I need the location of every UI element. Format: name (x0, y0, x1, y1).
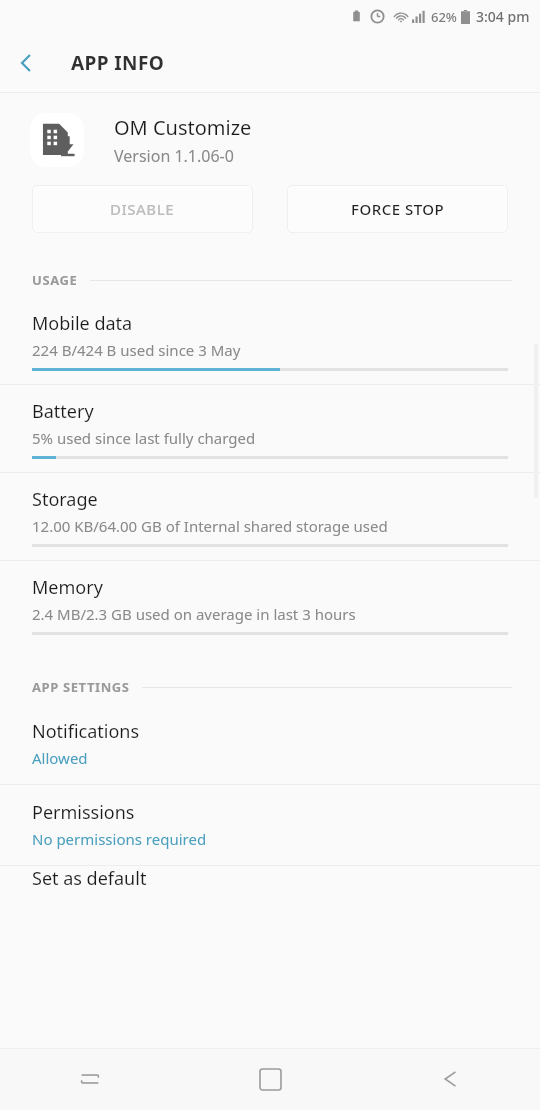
staticText: Mobile data (32, 311, 133, 336)
staticText: 224 B/424 B used since 3 May (32, 340, 241, 360)
button[interactable]: Back (360, 1048, 540, 1110)
staticText: Allowed (32, 748, 88, 768)
button[interactable]: Battery (0, 385, 540, 472)
button[interactable]: Notifications (0, 704, 540, 784)
button[interactable]: Memory (0, 561, 540, 648)
staticText: Set as default (32, 866, 147, 891)
button[interactable]: FORCE STOP (287, 185, 508, 233)
staticText: APP SETTINGS (32, 678, 130, 696)
button[interactable]: Home (180, 1048, 360, 1110)
staticText: DISABLE (110, 199, 175, 219)
button[interactable]: Recents (0, 1048, 180, 1110)
staticText: 12.00 KB/64.00 GB of Internal shared sto… (32, 516, 388, 536)
staticText: 5% used since last fully charged (32, 428, 256, 448)
staticText: Battery (32, 399, 94, 424)
staticText: 2.4 MB/2.3 GB used on average in last 3 … (32, 604, 356, 624)
button[interactable]: Mobile data (0, 297, 540, 384)
staticText: 62% (431, 8, 457, 26)
button[interactable]: Back (0, 37, 52, 89)
staticText: No permissions required (32, 829, 207, 849)
staticText: FORCE STOP (351, 199, 445, 219)
staticText: Memory (32, 575, 103, 600)
staticText: Permissions (32, 800, 135, 825)
button[interactable]: DISABLE (32, 185, 253, 233)
staticText: Storage (32, 487, 98, 512)
staticText: OM Customize (114, 114, 252, 141)
staticText: USAGE (32, 271, 78, 289)
staticText: 3:04 pm (476, 7, 530, 26)
button[interactable]: Permissions (0, 785, 540, 865)
staticText: APP INFO (71, 50, 165, 76)
staticText: Notifications (32, 719, 140, 744)
button[interactable]: Storage (0, 473, 540, 560)
staticText: Version 1.1.06-0 (114, 145, 234, 167)
